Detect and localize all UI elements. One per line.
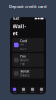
button[interactable]: Cards <box>19 88 28 93</box>
staticText: Wallet <box>12 22 26 37</box>
staticText: •••• 4291 <box>20 43 28 50</box>
button[interactable]: More <box>37 88 46 93</box>
staticText: Cards <box>21 91 26 93</box>
staticText: Pay <box>20 55 25 58</box>
button[interactable]: Card <box>12 38 44 52</box>
staticText: Deposit credit card <box>9 4 47 9</box>
staticText: 9:41 <box>12 16 19 21</box>
staticText: Card <box>20 39 27 43</box>
staticText: Balance <box>20 74 30 77</box>
staticText: Transit <box>20 70 29 73</box>
button[interactable]: Send <box>28 88 37 93</box>
button[interactable]: Transit <box>12 68 44 78</box>
button[interactable]: Pay <box>12 53 44 67</box>
staticText: More <box>39 91 43 93</box>
staticText: Apple Pay <box>20 58 29 66</box>
button[interactable]: Home <box>10 88 19 93</box>
staticText: Send <box>30 91 34 93</box>
staticText: Home <box>12 91 16 93</box>
